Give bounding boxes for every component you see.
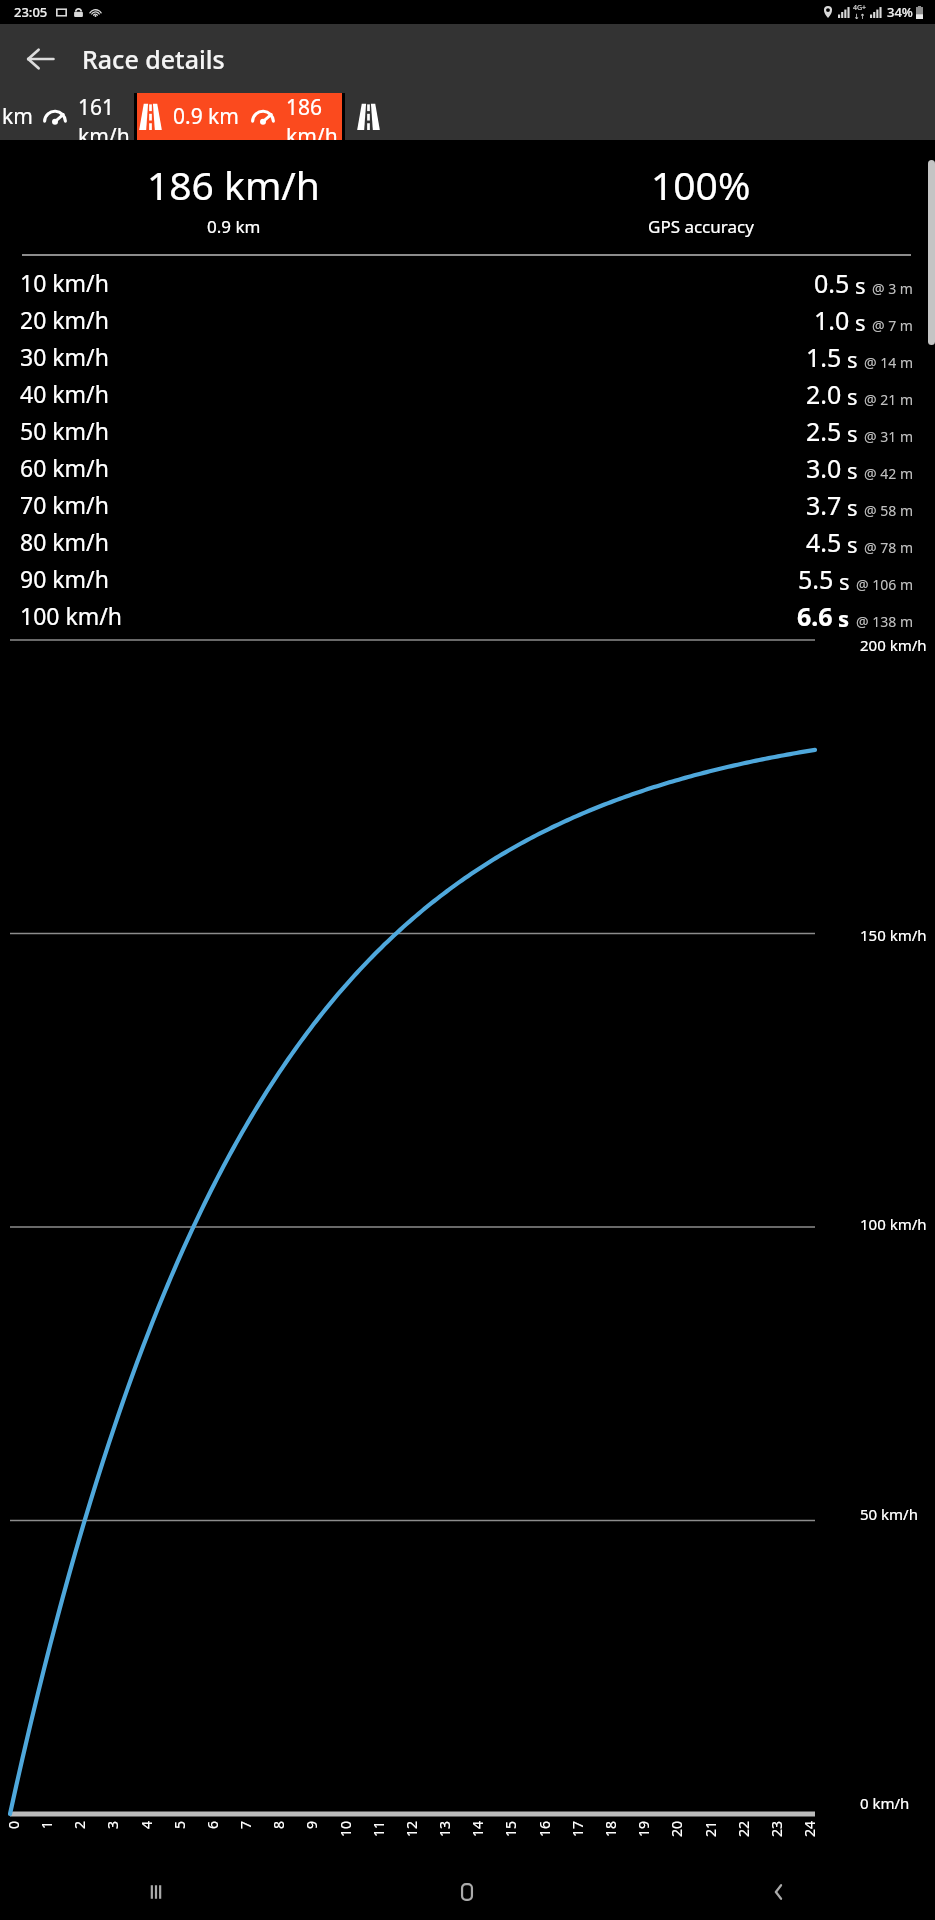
staticText: 200 km/h: [860, 635, 927, 655]
staticText: 12: [400, 1818, 419, 1835]
staticText: 70 km/h: [20, 489, 109, 520]
staticText: @ 42 m: [864, 464, 913, 483]
staticText: 30 km/h: [20, 341, 109, 372]
staticText: s: [855, 270, 866, 300]
staticText: @ 106 m: [856, 575, 913, 594]
staticText: 100 km/h: [860, 1214, 927, 1234]
button[interactable]: 70 km/h: [20, 486, 913, 523]
staticText: Race details: [82, 42, 225, 76]
staticText: 3.7: [806, 488, 842, 522]
staticText: s: [847, 492, 858, 522]
staticText: @ 138 m: [856, 612, 913, 631]
button[interactable]: km: [0, 93, 134, 140]
staticText: 1: [35, 1818, 54, 1827]
staticText: 1.5: [806, 340, 842, 374]
button[interactable]: 0.9 km: [137, 93, 342, 140]
staticText: 7: [234, 1818, 253, 1827]
staticText: 5.5: [798, 562, 834, 596]
staticText: @ 7 m: [872, 316, 913, 335]
staticText: s: [847, 344, 858, 374]
staticText: 21: [699, 1818, 718, 1835]
staticText: @ 14 m: [864, 353, 913, 372]
staticText: 150 km/h: [860, 925, 927, 945]
button[interactable]: 30 km/h: [20, 338, 913, 375]
staticText: 0.9 km: [173, 102, 239, 131]
staticText: 10 km/h: [20, 267, 109, 298]
staticText: 20 km/h: [20, 304, 109, 335]
button[interactable]: Back: [623, 1864, 935, 1920]
staticText: 15: [499, 1818, 518, 1835]
staticText: 4G+: [853, 3, 867, 13]
staticText: 3: [101, 1818, 120, 1827]
staticText: 24: [798, 1818, 817, 1835]
staticText: 0.5: [814, 266, 850, 300]
staticText: @ 21 m: [864, 390, 913, 409]
staticText: 20: [665, 1818, 684, 1835]
staticText: 18: [599, 1818, 618, 1835]
staticText: 9: [300, 1818, 319, 1827]
staticText: s: [847, 455, 858, 485]
staticText: 19: [632, 1818, 651, 1835]
button[interactable]: [345, 93, 935, 140]
staticText: 13: [433, 1818, 452, 1835]
staticText: s: [838, 603, 850, 633]
staticText: 100 km/h: [20, 600, 123, 631]
staticText: 11: [367, 1818, 386, 1835]
staticText: 5: [168, 1818, 187, 1827]
staticText: 10: [334, 1818, 353, 1835]
staticText: s: [847, 418, 858, 448]
staticText: s: [855, 307, 866, 337]
staticText: 50 km/h: [860, 1504, 918, 1524]
staticText: @ 3 m: [872, 279, 913, 298]
staticText: 22: [732, 1818, 751, 1835]
staticText: 100%: [651, 158, 751, 211]
button[interactable]: Back: [12, 31, 68, 87]
staticText: 34%: [887, 3, 913, 21]
staticText: 8: [267, 1818, 286, 1827]
staticText: 50 km/h: [20, 415, 109, 446]
staticText: 186 km/h: [286, 93, 342, 140]
button[interactable]: 10 km/h: [20, 264, 913, 301]
staticText: 23: [765, 1818, 784, 1835]
staticText: 1.0: [814, 303, 850, 337]
staticText: km: [2, 102, 33, 131]
button[interactable]: 100 km/h: [20, 597, 913, 634]
staticText: 14: [466, 1818, 485, 1835]
button[interactable]: 80 km/h: [20, 523, 913, 560]
staticText: ↓↑: [854, 13, 866, 21]
staticText: 90 km/h: [20, 563, 109, 594]
staticText: s: [839, 566, 850, 596]
staticText: s: [847, 381, 858, 411]
staticText: 60 km/h: [20, 452, 109, 483]
staticText: 161 km/h: [78, 93, 134, 140]
button[interactable]: Recents: [0, 1864, 311, 1920]
staticText: 2.0: [806, 377, 842, 411]
button[interactable]: 90 km/h: [20, 560, 913, 597]
staticText: @ 78 m: [864, 538, 913, 557]
staticText: 4.5: [806, 525, 842, 559]
staticText: GPS accuracy: [648, 215, 754, 238]
staticText: 2: [68, 1818, 87, 1827]
button[interactable]: 40 km/h: [20, 375, 913, 412]
staticText: 40 km/h: [20, 378, 109, 409]
button[interactable]: 60 km/h: [20, 449, 913, 486]
button[interactable]: 20 km/h: [20, 301, 913, 338]
button[interactable]: 50 km/h: [20, 412, 913, 449]
staticText: 3.0: [806, 451, 842, 485]
staticText: 6.6: [797, 599, 833, 633]
staticText: 0 km/h: [860, 1793, 910, 1813]
staticText: 4: [135, 1818, 154, 1827]
staticText: @ 31 m: [864, 427, 913, 446]
staticText: 0: [2, 1818, 21, 1827]
staticText: @ 58 m: [864, 501, 913, 520]
staticText: 17: [566, 1818, 585, 1835]
staticText: 0.9 km: [207, 215, 261, 238]
button[interactable]: Home: [311, 1864, 623, 1920]
staticText: 2.5: [806, 414, 842, 448]
staticText: 186 km/h: [147, 158, 320, 211]
staticText: 80 km/h: [20, 526, 109, 557]
staticText: 16: [533, 1818, 552, 1835]
staticText: 23:05: [14, 3, 48, 21]
staticText: s: [847, 529, 858, 559]
staticText: 6: [201, 1818, 220, 1827]
